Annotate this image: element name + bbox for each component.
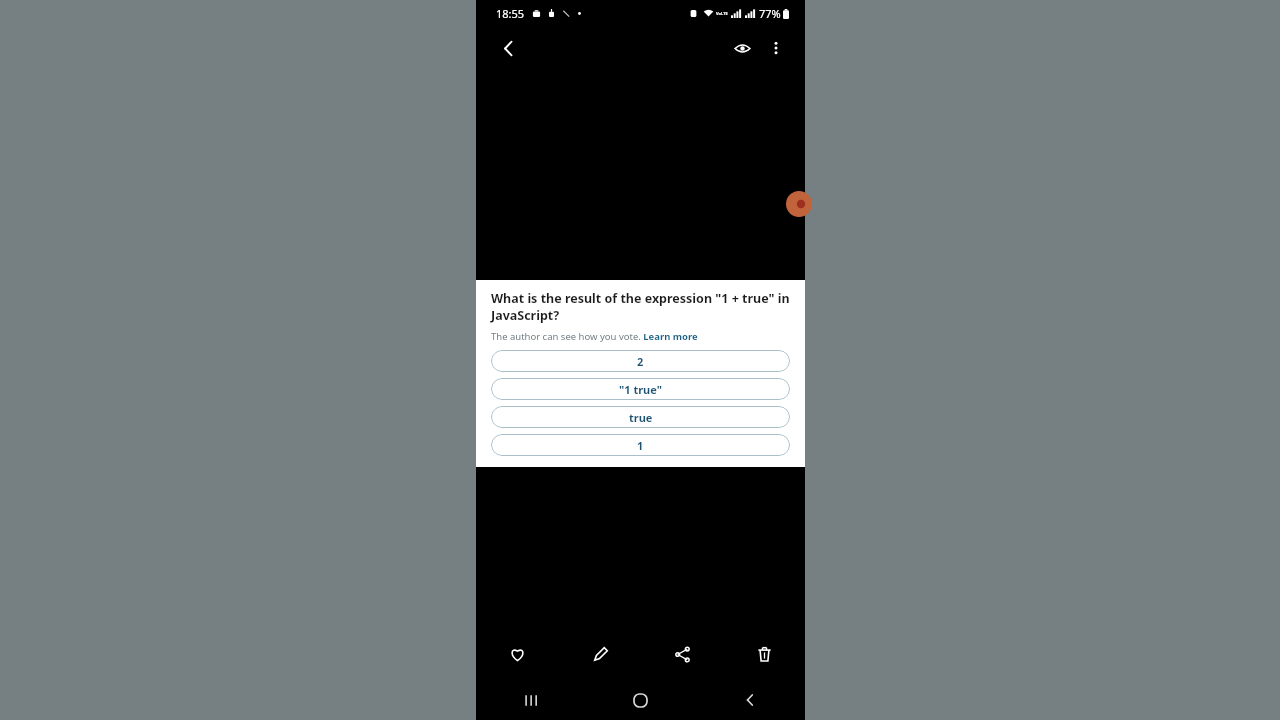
button[interactable]: More options <box>759 31 793 65</box>
staticText: 77% <box>759 6 781 21</box>
button[interactable]: Like <box>476 628 559 680</box>
button[interactable]: Edit <box>559 628 641 680</box>
button[interactable]: 1 <box>491 434 790 456</box>
button[interactable]: "1 true" <box>491 378 790 400</box>
staticText: VoLTE <box>716 11 728 16</box>
button[interactable]: 2 <box>491 350 790 372</box>
button[interactable]: Recents <box>476 680 585 720</box>
staticText: 1 <box>637 438 644 453</box>
button[interactable]: Back <box>490 30 526 66</box>
staticText: "1 true" <box>619 382 662 397</box>
staticText: true <box>629 410 653 425</box>
staticText: The author can see how you vote. Learn m… <box>491 330 698 343</box>
button[interactable]: Views <box>725 31 759 65</box>
staticText: 2 <box>637 354 644 369</box>
button[interactable]: Delete <box>723 628 805 680</box>
button[interactable]: true <box>491 406 790 428</box>
staticText: 18:55 <box>496 6 525 21</box>
button[interactable]: Back <box>695 680 805 720</box>
button[interactable]: Share <box>641 628 723 680</box>
button[interactable]: Home <box>585 680 695 720</box>
staticText: What is the result of the expression "1 … <box>491 290 790 324</box>
